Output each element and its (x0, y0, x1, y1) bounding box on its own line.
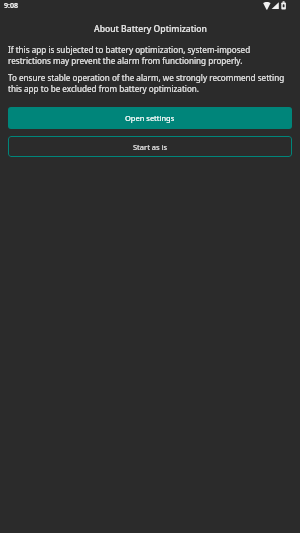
staticText: To ensure stable operation of the alarm,… (8, 72, 292, 94)
other: Wi-Fi, mobile signal and battery status (262, 0, 288, 12)
staticText: 9:08 (4, 1, 18, 11)
button[interactable]: Open settings (8, 107, 292, 129)
staticText: If this app is subjected to battery opti… (8, 44, 292, 66)
staticText: About Battery Optimization (94, 23, 207, 35)
staticText: Open settings (125, 113, 175, 123)
button[interactable]: Start as is (8, 136, 292, 157)
staticText: Start as is (133, 142, 168, 152)
